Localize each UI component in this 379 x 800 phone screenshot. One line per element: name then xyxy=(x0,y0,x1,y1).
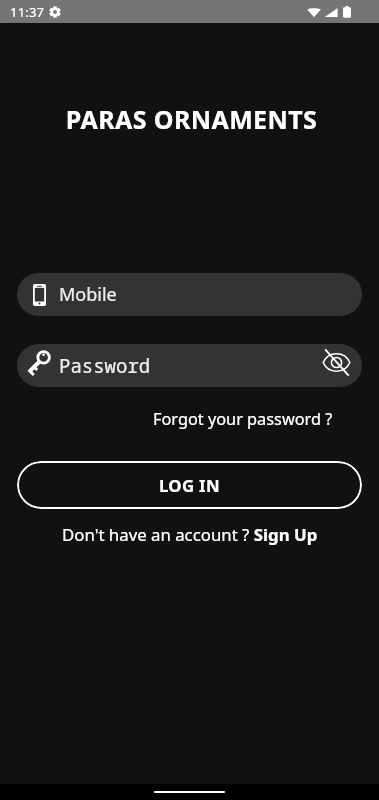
staticText: Forgot your password ? xyxy=(153,408,333,430)
button[interactable]: Mobile xyxy=(17,273,362,316)
staticText: Don't have an account ? Sign Up xyxy=(62,523,318,546)
staticText: Password xyxy=(59,353,151,379)
button[interactable]: LOG IN xyxy=(17,461,362,509)
staticText: 11:37 xyxy=(10,3,45,21)
button[interactable]: Password xyxy=(17,344,362,387)
staticText: Mobile xyxy=(59,282,117,307)
button[interactable]: Forgot your password ? xyxy=(149,404,337,434)
button[interactable]: Show password xyxy=(316,346,356,386)
button[interactable]: Don't have an account ? Sign Up xyxy=(0,523,379,546)
staticText: PARAS ORNAMENTS xyxy=(2,102,379,136)
staticText: LOG IN xyxy=(159,474,220,497)
